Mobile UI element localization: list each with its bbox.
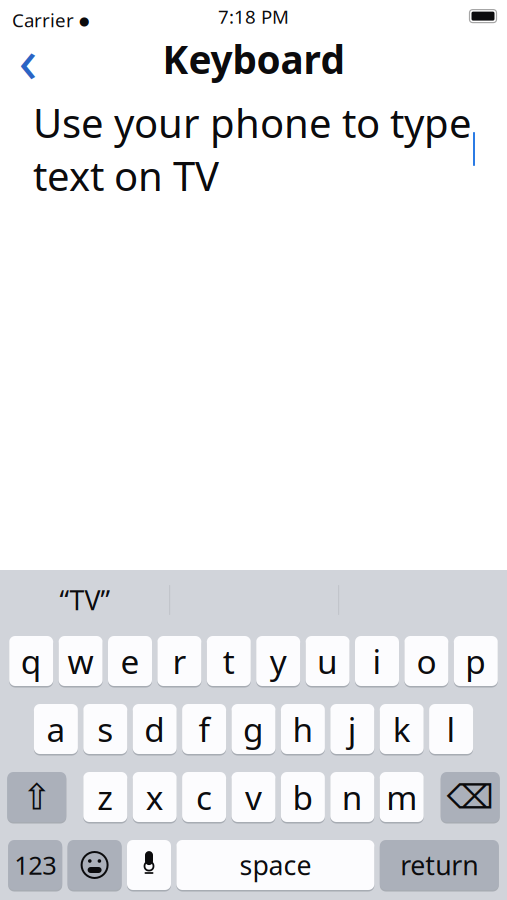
staticText: q (21, 639, 42, 683)
staticText: w (68, 639, 94, 683)
button[interactable]: q (9, 636, 53, 686)
button[interactable]: Space (176, 840, 374, 890)
button[interactable]: v (231, 772, 275, 822)
button[interactable]: r (157, 636, 201, 686)
staticText: p (465, 639, 486, 683)
staticText: n (342, 775, 363, 819)
staticText: y (270, 639, 287, 683)
button[interactable]: n (330, 772, 374, 822)
staticText: return (400, 847, 478, 883)
staticText: o (416, 639, 436, 683)
button[interactable]: z (83, 772, 127, 822)
staticText: Carrier (12, 8, 74, 32)
staticText: m (386, 775, 417, 819)
staticText: f (199, 707, 210, 751)
button[interactable]: p (454, 636, 498, 686)
button[interactable]: a (34, 704, 78, 754)
staticText: 123 (14, 848, 56, 882)
button[interactable]: Numbers (8, 840, 62, 890)
button[interactable]: f (182, 704, 226, 754)
staticText: t (223, 639, 235, 683)
staticText: “TV” (59, 582, 110, 618)
staticText: x (146, 775, 164, 819)
button[interactable]: l (429, 704, 473, 754)
button[interactable]: o (404, 636, 448, 686)
staticText: u (317, 639, 338, 683)
staticText: r (172, 639, 186, 683)
button[interactable]: d (133, 704, 177, 754)
button[interactable]: Dictate (127, 840, 171, 890)
staticText: k (393, 707, 411, 751)
button[interactable]: Delete (441, 772, 500, 822)
staticText: l (447, 707, 456, 751)
staticText: space (239, 847, 311, 883)
staticText: Use your phone to type text on TV (33, 96, 472, 202)
staticText: h (292, 707, 313, 751)
button[interactable]: e (108, 636, 152, 686)
button[interactable]: Return (380, 840, 499, 890)
button[interactable]: t (207, 636, 251, 686)
button[interactable]: Shift (7, 772, 66, 822)
button[interactable]: i (355, 636, 399, 686)
button[interactable]: s (83, 704, 127, 754)
button[interactable]: c (182, 772, 226, 822)
button[interactable]: m (380, 772, 424, 822)
staticText: v (245, 775, 262, 819)
staticText: ● (79, 14, 89, 28)
staticText: ⇧ (22, 777, 52, 817)
button[interactable]: u (306, 636, 350, 686)
staticText: a (46, 707, 65, 751)
staticText: ⌫ (447, 778, 494, 816)
staticText: ‹ (18, 18, 37, 100)
staticText: s (97, 707, 113, 751)
staticText: g (243, 707, 264, 751)
staticText: j (348, 707, 357, 751)
staticText: e (120, 639, 139, 683)
button[interactable]: h (281, 704, 325, 754)
button[interactable]: g (231, 704, 275, 754)
button[interactable]: k (380, 704, 424, 754)
button[interactable]: x (133, 772, 177, 822)
button[interactable]: j (330, 704, 374, 754)
staticText: c (196, 775, 212, 819)
button[interactable]: b (281, 772, 325, 822)
staticText: b (292, 775, 313, 819)
staticText: z (97, 775, 113, 819)
button[interactable]: w (59, 636, 103, 686)
staticText: Keyboard (162, 33, 344, 85)
staticText: 7:18 PM (218, 4, 289, 29)
button[interactable]: Back (3, 34, 53, 84)
button[interactable]: “TV” (0, 570, 170, 630)
staticText: d (144, 707, 165, 751)
button[interactable]: Emoji (68, 840, 122, 890)
staticText: i (372, 639, 381, 683)
button[interactable]: y (256, 636, 300, 686)
